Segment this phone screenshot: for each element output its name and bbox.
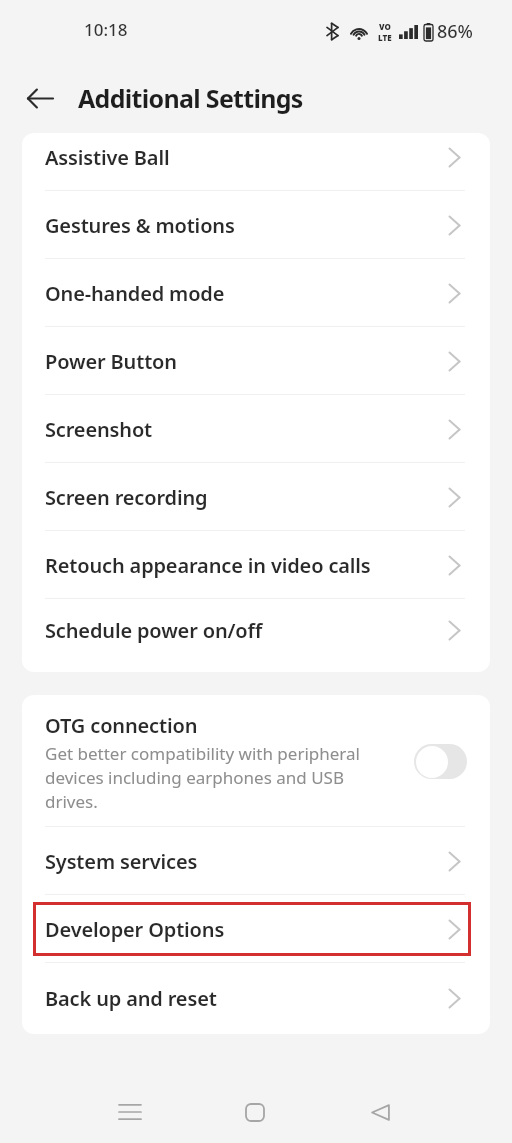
staticText: Power Button [45, 348, 449, 375]
staticText: Back up and reset [45, 985, 449, 1012]
staticText: Assistive Ball [45, 144, 449, 171]
staticText: VO [379, 21, 391, 32]
staticText: LTE [378, 32, 392, 43]
button[interactable]: Back [15, 73, 65, 123]
staticText: Retouch appearance in video calls [45, 552, 449, 579]
button[interactable]: One-handed mode [22, 259, 490, 327]
staticText: Get better compatibility with peripheral… [45, 742, 370, 813]
button[interactable]: Home [230, 1087, 280, 1137]
staticText: Schedule power on/off [45, 617, 449, 644]
staticText: Screenshot [45, 416, 449, 443]
button[interactable]: Retouch appearance in video calls [22, 531, 490, 599]
button[interactable]: Schedule power on/off [22, 599, 490, 662]
staticText: 10:18 [84, 18, 128, 41]
staticText: Developer Options [45, 916, 449, 943]
button[interactable]: Back [355, 1087, 405, 1137]
staticText: Additional Settings [78, 81, 303, 115]
button[interactable]: Assistive Ball [22, 133, 490, 191]
button[interactable]: Back up and reset [22, 963, 490, 1034]
staticText: One-handed mode [45, 280, 449, 307]
staticText: Screen recording [45, 484, 449, 511]
button[interactable]: System services [22, 827, 490, 895]
button[interactable]: Gestures & motions [22, 191, 490, 259]
button[interactable]: Screen recording [22, 463, 490, 531]
staticText: OTG connection [45, 712, 198, 739]
button[interactable]: Recent apps [105, 1087, 155, 1137]
staticText: 86% [437, 19, 473, 44]
staticText: System services [45, 848, 449, 875]
button[interactable]: OTG connection [22, 695, 490, 827]
button[interactable]: Developer Options [22, 895, 490, 963]
button[interactable]: Power Button [22, 327, 490, 395]
button[interactable]: Toggle OTG connection [414, 744, 467, 779]
button[interactable]: Screenshot [22, 395, 490, 463]
staticText: Gestures & motions [45, 212, 449, 239]
